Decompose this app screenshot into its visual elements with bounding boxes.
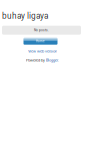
button[interactable]: Home — [23, 38, 57, 45]
staticText: View web version — [28, 49, 57, 53]
staticText: Powered by — [26, 58, 45, 62]
staticText: Blogger. — [46, 58, 59, 62]
staticText: No posts. — [34, 28, 49, 32]
staticText: buhay ligaya — [2, 11, 48, 21]
staticText: Home — [36, 39, 45, 43]
button[interactable]: View web version — [0, 49, 85, 54]
